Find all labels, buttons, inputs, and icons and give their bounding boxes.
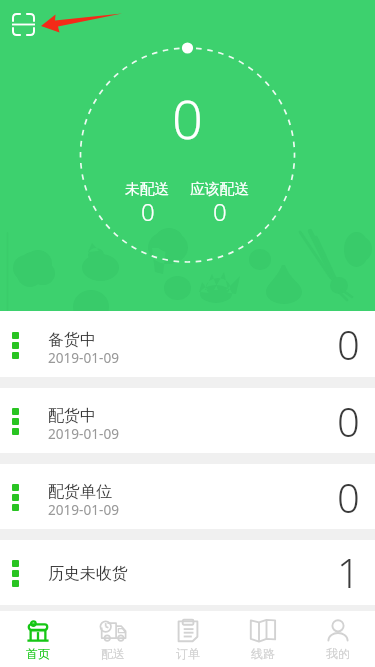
staticText: 应该配送 <box>190 180 250 199</box>
button[interactable]: 配货单位 <box>0 464 375 529</box>
staticText: 0 <box>337 317 360 371</box>
staticText: 配货单位 <box>48 482 112 502</box>
staticText: 配货中 <box>48 406 96 426</box>
staticText: 历史未收货 <box>48 564 128 584</box>
staticText: 订单 <box>176 646 200 661</box>
staticText: 线路 <box>251 646 275 661</box>
button[interactable]: 我的 <box>300 611 375 667</box>
staticText: 备货中 <box>48 330 96 350</box>
button[interactable]: 首页 <box>0 611 75 667</box>
staticText: 0 <box>213 195 227 228</box>
staticText: 0 <box>337 470 360 524</box>
staticText: 0 <box>337 394 360 448</box>
staticText: 我的 <box>326 646 350 661</box>
staticText: 2019-01-09 <box>48 500 119 519</box>
staticText: 2019-01-09 <box>48 424 119 443</box>
staticText: 0 <box>141 195 155 228</box>
staticText: 0 <box>172 81 203 155</box>
button[interactable]: 线路 <box>225 611 300 667</box>
staticText: 配送 <box>101 646 125 661</box>
staticText: 1 <box>337 545 360 599</box>
staticText: 首页 <box>26 646 50 661</box>
button[interactable]: 历史未收货 <box>0 540 375 604</box>
staticText: 未配送 <box>125 180 170 199</box>
staticText: 2019-01-09 <box>48 348 119 367</box>
button[interactable]: 配货中 <box>0 388 375 453</box>
button[interactable]: 备货中 <box>0 311 375 377</box>
button[interactable]: Scan QR code <box>12 13 35 36</box>
button[interactable]: 订单 <box>150 611 225 667</box>
button[interactable]: 配送 <box>75 611 150 667</box>
